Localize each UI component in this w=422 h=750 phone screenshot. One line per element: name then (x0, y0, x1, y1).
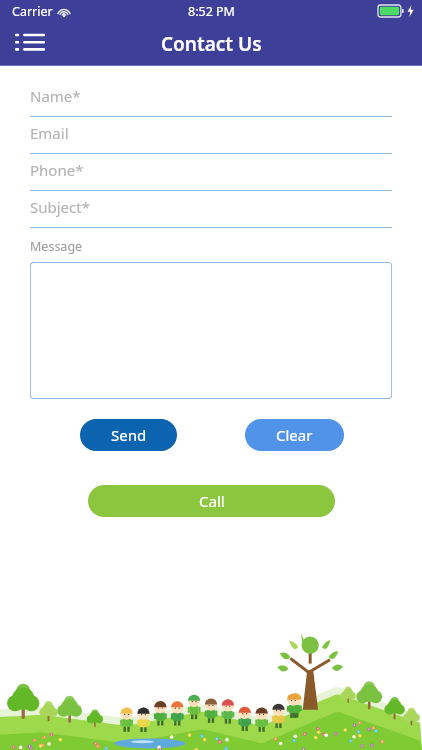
button[interactable]: Name* (30, 80, 392, 117)
button[interactable]: Clear (245, 419, 344, 451)
staticText: Contact Us (161, 31, 262, 57)
staticText: Send (111, 425, 147, 445)
button[interactable]: Subject* (30, 191, 392, 228)
button[interactable]: Call (88, 485, 335, 517)
staticText: Carrier (12, 3, 53, 20)
button[interactable]: Send (80, 419, 177, 451)
staticText: Name* (30, 86, 81, 106)
button[interactable]: Email (30, 117, 392, 154)
staticText: Message (30, 238, 83, 255)
staticText: Phone* (30, 160, 84, 180)
staticText: Email (30, 123, 69, 143)
staticText: Subject* (30, 197, 90, 217)
button[interactable]: Phone* (30, 154, 392, 191)
staticText: Call (199, 491, 225, 511)
staticText: 8:52 PM (188, 3, 235, 20)
button[interactable]: Menu (10, 27, 50, 61)
staticText: Clear (276, 425, 313, 445)
button[interactable] (30, 262, 392, 399)
